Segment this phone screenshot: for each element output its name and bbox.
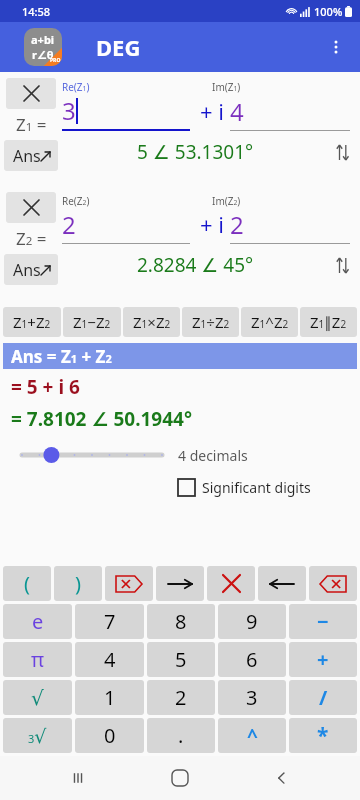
button[interactable]: 9 bbox=[218, 604, 286, 639]
button[interactable]: 1 bbox=[75, 680, 144, 715]
button[interactable]: Home bbox=[156, 756, 204, 800]
button[interactable]: Backspace bbox=[309, 566, 357, 601]
staticText: Ans bbox=[13, 145, 41, 167]
button[interactable]: 6 bbox=[218, 642, 286, 677]
button[interactable]: * bbox=[289, 718, 357, 753]
button[interactable]: Recents bbox=[54, 756, 102, 800]
staticText: Z1 = bbox=[16, 113, 47, 136]
button[interactable]: Decimals slider bbox=[22, 440, 162, 470]
button[interactable]: Z1÷Z2 bbox=[182, 307, 239, 337]
button[interactable]: 7 bbox=[75, 604, 144, 639]
button[interactable]: 2 bbox=[147, 680, 215, 715]
staticText: * bbox=[317, 721, 329, 750]
staticText: 2.8284 ∠ 45° bbox=[137, 252, 254, 278]
staticText: r∠θ bbox=[32, 47, 54, 62]
staticText: = 5 + i 6 bbox=[11, 374, 80, 400]
button[interactable]: Clear Z2 bbox=[6, 192, 56, 223]
staticText: ^ bbox=[247, 723, 258, 749]
staticText: Im(Z1) bbox=[212, 80, 241, 94]
staticText: Z1∥Z2 bbox=[310, 312, 347, 332]
staticText: π bbox=[31, 646, 45, 673]
staticText: 6 bbox=[246, 646, 258, 673]
staticText: 4 bbox=[104, 646, 116, 673]
button[interactable]: 3 bbox=[218, 680, 286, 715]
staticText: Im(Z2) bbox=[212, 194, 241, 208]
staticText: + i bbox=[200, 209, 224, 239]
staticText: ) bbox=[75, 570, 81, 597]
staticText: 2 bbox=[230, 208, 244, 241]
button[interactable]: 5 bbox=[147, 642, 215, 677]
staticText: 0 bbox=[104, 722, 116, 749]
button[interactable]: e bbox=[3, 604, 72, 639]
staticText: Re(Z2) bbox=[62, 194, 212, 208]
button[interactable]: 4 bbox=[75, 642, 144, 677]
staticText: Z1^Z2 bbox=[251, 312, 289, 332]
button[interactable]: Swap form Z2 bbox=[328, 251, 356, 279]
button[interactable]: Back bbox=[258, 566, 306, 601]
button[interactable]: Z1−Z2 bbox=[63, 307, 121, 337]
button[interactable]: Z1×Z2 bbox=[123, 307, 180, 337]
button[interactable]: + bbox=[289, 642, 357, 677]
staticText: √ bbox=[31, 686, 44, 709]
button[interactable]: Forward bbox=[156, 566, 204, 601]
button[interactable]: π bbox=[3, 642, 72, 677]
staticText: . bbox=[178, 722, 184, 749]
staticText: + i bbox=[200, 96, 224, 126]
staticText: Z2 = bbox=[16, 227, 47, 250]
staticText: ( bbox=[24, 570, 30, 597]
staticText: a+bi bbox=[31, 32, 55, 47]
button[interactable]: Ans bbox=[4, 254, 58, 285]
button[interactable]: Z1∥Z2 bbox=[300, 307, 357, 337]
button[interactable]: 8 bbox=[147, 604, 215, 639]
button[interactable]: App icon bbox=[24, 28, 62, 66]
staticText: 5 ∠ 53.1301° bbox=[137, 139, 254, 165]
button[interactable]: Z1+Z2 bbox=[3, 307, 61, 337]
staticText: Ans = Z1 + Z2 bbox=[11, 345, 112, 368]
button[interactable]: Z1^Z2 bbox=[241, 307, 298, 337]
staticText: Z1−Z2 bbox=[73, 312, 111, 332]
staticText: 2 bbox=[62, 208, 76, 241]
staticText: 3√ bbox=[28, 725, 47, 747]
staticText: = 7.8102 ∠ 50.1944° bbox=[11, 406, 193, 432]
staticText: Ans bbox=[13, 259, 41, 281]
button[interactable]: Delete bbox=[207, 566, 255, 601]
button[interactable]: . bbox=[147, 718, 215, 753]
staticText: / bbox=[319, 684, 328, 711]
staticText: 8 bbox=[175, 608, 187, 635]
button[interactable]: More options bbox=[318, 29, 354, 65]
staticText: DEG bbox=[96, 32, 141, 62]
staticText: 3 bbox=[62, 94, 76, 127]
button[interactable]: Ans = Z1 + Z2 bbox=[3, 343, 357, 369]
staticText: − bbox=[317, 608, 329, 635]
staticText: 2 bbox=[175, 684, 187, 711]
button[interactable]: Clear all bbox=[105, 566, 153, 601]
button[interactable]: 0 bbox=[75, 718, 144, 753]
button[interactable]: ) bbox=[54, 566, 102, 601]
staticText: PRO bbox=[50, 57, 61, 64]
button[interactable]: − bbox=[289, 604, 357, 639]
staticText: 4 bbox=[230, 95, 244, 128]
button[interactable]: Ans bbox=[4, 140, 58, 171]
button[interactable]: Significant digits bbox=[178, 472, 360, 502]
staticText: Re(Z1) bbox=[62, 80, 212, 94]
staticText: Z1×Z2 bbox=[133, 312, 171, 332]
staticText: 4 decimals bbox=[178, 446, 248, 465]
staticText: 1 bbox=[104, 684, 116, 711]
button[interactable]: ( bbox=[3, 566, 51, 601]
button[interactable]: ^ bbox=[218, 718, 286, 753]
button[interactable]: √ bbox=[3, 680, 72, 715]
staticText: 14:58 bbox=[22, 4, 51, 19]
button[interactable]: / bbox=[289, 680, 357, 715]
staticText: Significant digits bbox=[202, 478, 311, 497]
staticText: Z1÷Z2 bbox=[192, 312, 230, 332]
button[interactable]: Cube root bbox=[3, 718, 72, 753]
staticText: + bbox=[317, 646, 329, 673]
staticText: 3 bbox=[246, 684, 258, 711]
button[interactable]: Clear Z1 bbox=[6, 78, 56, 109]
staticText: e bbox=[32, 608, 44, 635]
staticText: 100% bbox=[314, 4, 343, 19]
button[interactable]: Swap form Z1 bbox=[328, 138, 356, 166]
staticText: Z1+Z2 bbox=[13, 312, 51, 332]
staticText: 5 bbox=[175, 646, 187, 673]
button[interactable]: Back bbox=[258, 756, 306, 800]
